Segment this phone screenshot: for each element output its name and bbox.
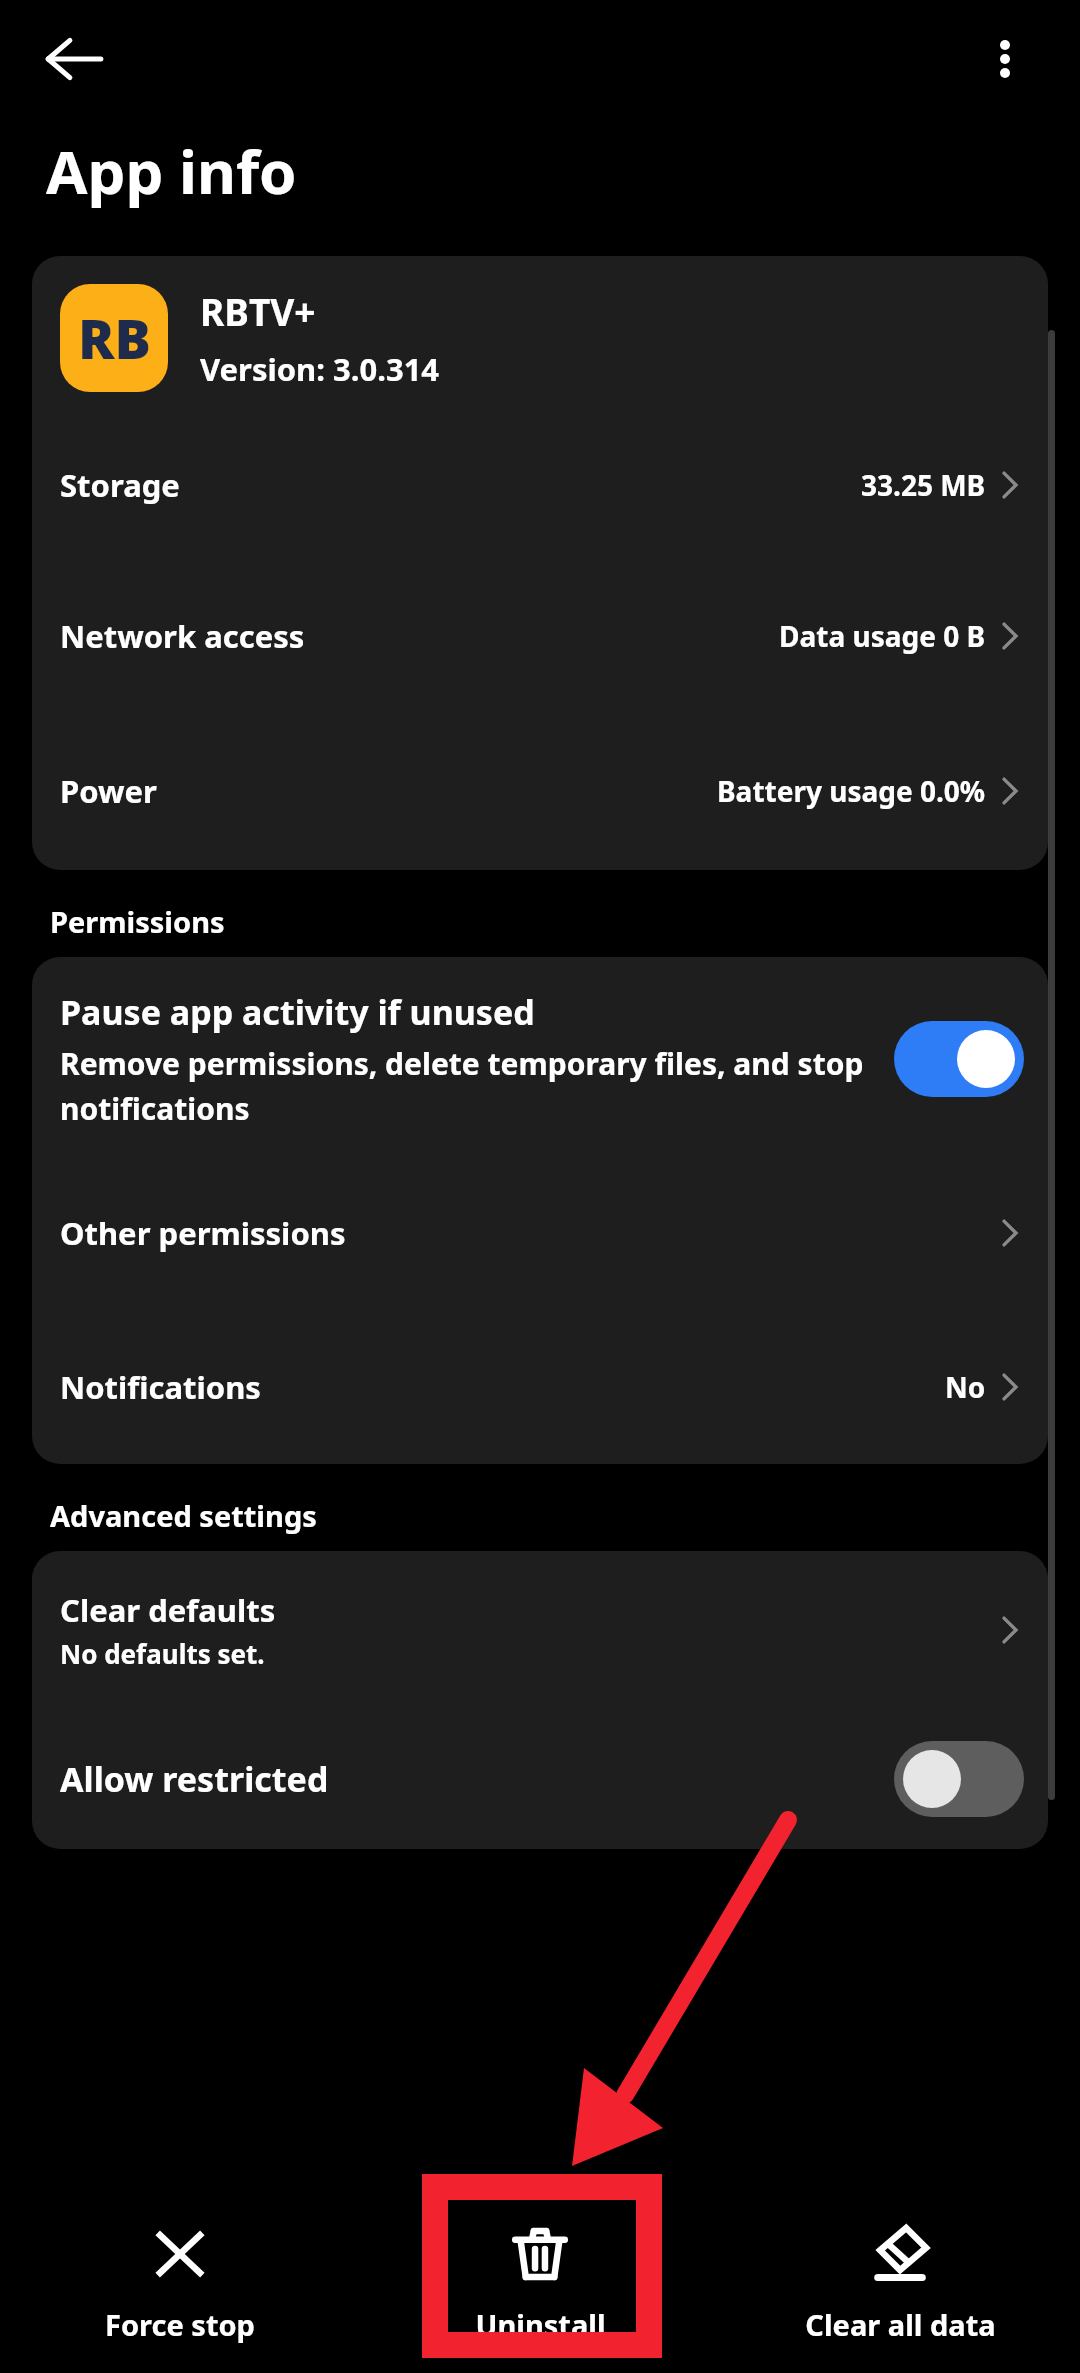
staticText: RB	[78, 301, 151, 375]
staticText: No defaults set.	[60, 1636, 265, 1671]
button[interactable]: Allow restricted	[32, 1709, 1048, 1849]
button[interactable]: Network access	[32, 560, 1048, 712]
staticText: Remove permissions, delete temporary fil…	[60, 1043, 882, 1128]
button[interactable]: Clear defaults	[32, 1551, 1048, 1709]
staticText: Version: 3.0.314	[200, 348, 440, 390]
button[interactable]: Pause app activity if unused	[32, 957, 1048, 1156]
button[interactable]: More options	[976, 30, 1034, 88]
button[interactable]: Force stop	[0, 2193, 360, 2373]
staticText: No	[945, 1368, 986, 1406]
staticText: Allow restricted	[60, 1756, 894, 1802]
button[interactable]: Notifications	[32, 1310, 1048, 1464]
button[interactable]: Storage	[32, 410, 1048, 560]
button[interactable]: Uninstall	[360, 2193, 720, 2373]
staticText: Clear all data	[805, 2305, 996, 2344]
staticText: Force stop	[105, 2305, 255, 2344]
staticText: Data usage 0 B	[779, 617, 986, 655]
button[interactable]: Power	[32, 712, 1048, 870]
staticText: 33.25 MB	[861, 466, 986, 504]
staticText: Notifications	[60, 1366, 261, 1408]
staticText: Clear defaults	[60, 1589, 276, 1631]
staticText: Advanced settings	[50, 1496, 317, 1535]
staticText: Network access	[60, 615, 305, 657]
staticText: Other permissions	[60, 1212, 346, 1254]
staticText: RBTV+	[200, 286, 316, 336]
button[interactable]	[894, 1021, 1024, 1097]
button[interactable]: Other permissions	[32, 1156, 1048, 1310]
staticText: Battery usage 0.0%	[717, 772, 986, 810]
button[interactable]: Back	[42, 28, 104, 90]
button[interactable]: Clear all data	[720, 2193, 1080, 2373]
staticText: Power	[60, 770, 157, 812]
staticText: Permissions	[50, 902, 225, 941]
staticText: Uninstall	[475, 2305, 606, 2344]
button[interactable]	[894, 1741, 1024, 1817]
staticText: App info	[46, 130, 297, 212]
staticText: Storage	[60, 464, 180, 506]
staticText: Pause app activity if unused	[60, 989, 535, 1035]
